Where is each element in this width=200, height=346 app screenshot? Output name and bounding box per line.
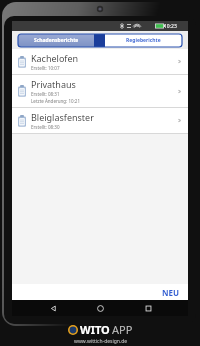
- staticText: Erstellt: 08:31: [31, 91, 60, 97]
- staticText: Regieberichte: [126, 37, 161, 44]
- button[interactable]: Recents: [141, 301, 155, 315]
- staticText: NEU: [162, 287, 180, 298]
- staticText: www.wittich-design.de: [74, 338, 128, 345]
- staticText: Erstellt: 08:30: [31, 124, 60, 130]
- staticText: APP: [112, 322, 133, 337]
- button[interactable]: Bleiglasfenster: [12, 108, 188, 134]
- staticText: Privathaus: [31, 78, 76, 90]
- staticText: Erstellt: 10:07: [31, 65, 60, 71]
- button[interactable]: Back: [46, 301, 60, 315]
- button[interactable]: Schadensberichte: [18, 34, 94, 47]
- button[interactable]: NEU: [162, 287, 180, 298]
- button[interactable]: Kachelofen: [12, 49, 188, 75]
- staticText: Bleiglasfenster: [31, 111, 94, 123]
- button[interactable]: Privathaus: [12, 75, 188, 108]
- staticText: Kachelofen: [31, 52, 79, 64]
- staticText: 10:23: [164, 23, 177, 30]
- button[interactable]: Home: [93, 301, 107, 315]
- button[interactable]: Regieberichte: [105, 34, 182, 47]
- staticText: Schadensberichte: [34, 37, 79, 44]
- staticText: Letzte Änderung: 10:21: [31, 98, 80, 104]
- staticText: WITO: [80, 322, 110, 337]
